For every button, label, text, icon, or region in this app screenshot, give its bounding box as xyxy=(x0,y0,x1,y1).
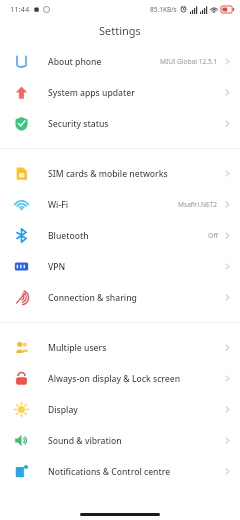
staticText: 85.1KB/s xyxy=(150,5,177,14)
staticText: Security status xyxy=(48,118,109,130)
staticText: Multiple users xyxy=(48,342,107,354)
button[interactable]: About phone xyxy=(0,46,240,77)
button[interactable]: Connection & sharing xyxy=(0,282,240,313)
button[interactable]: VPN xyxy=(0,251,240,282)
staticText: Off xyxy=(208,231,218,240)
button[interactable]: SIM cards & mobile networks xyxy=(0,158,240,189)
staticText: System apps updater xyxy=(48,87,135,99)
staticText: VPN xyxy=(48,261,66,273)
staticText: Connection & sharing xyxy=(48,292,137,304)
staticText: 11:44 xyxy=(10,4,30,14)
button[interactable]: Notifications & Control centre xyxy=(0,456,240,487)
button[interactable]: Bluetooth xyxy=(0,220,240,251)
staticText: SIM cards & mobile networks xyxy=(48,168,168,180)
staticText: Wi-Fi xyxy=(48,199,69,211)
staticText: Notifications & Control centre xyxy=(48,466,171,478)
staticText: Sound & vibration xyxy=(48,435,122,447)
staticText: Msafiri.NET2 xyxy=(178,200,218,209)
staticText: Settings xyxy=(99,23,141,38)
staticText: Always-on display & Lock screen xyxy=(48,373,181,385)
button[interactable]: System apps updater xyxy=(0,77,240,108)
button[interactable]: Security status xyxy=(0,108,240,139)
button[interactable]: Sound & vibration xyxy=(0,425,240,456)
button[interactable]: Always-on display & Lock screen xyxy=(0,363,240,394)
button[interactable]: Multiple users xyxy=(0,332,240,363)
staticText: MIUI Global 12.5.1 xyxy=(160,57,218,66)
staticText: Bluetooth xyxy=(48,230,89,242)
staticText: About phone xyxy=(48,56,102,68)
button[interactable]: Display xyxy=(0,394,240,425)
button[interactable]: Wi-Fi xyxy=(0,189,240,220)
staticText: Display xyxy=(48,404,78,416)
